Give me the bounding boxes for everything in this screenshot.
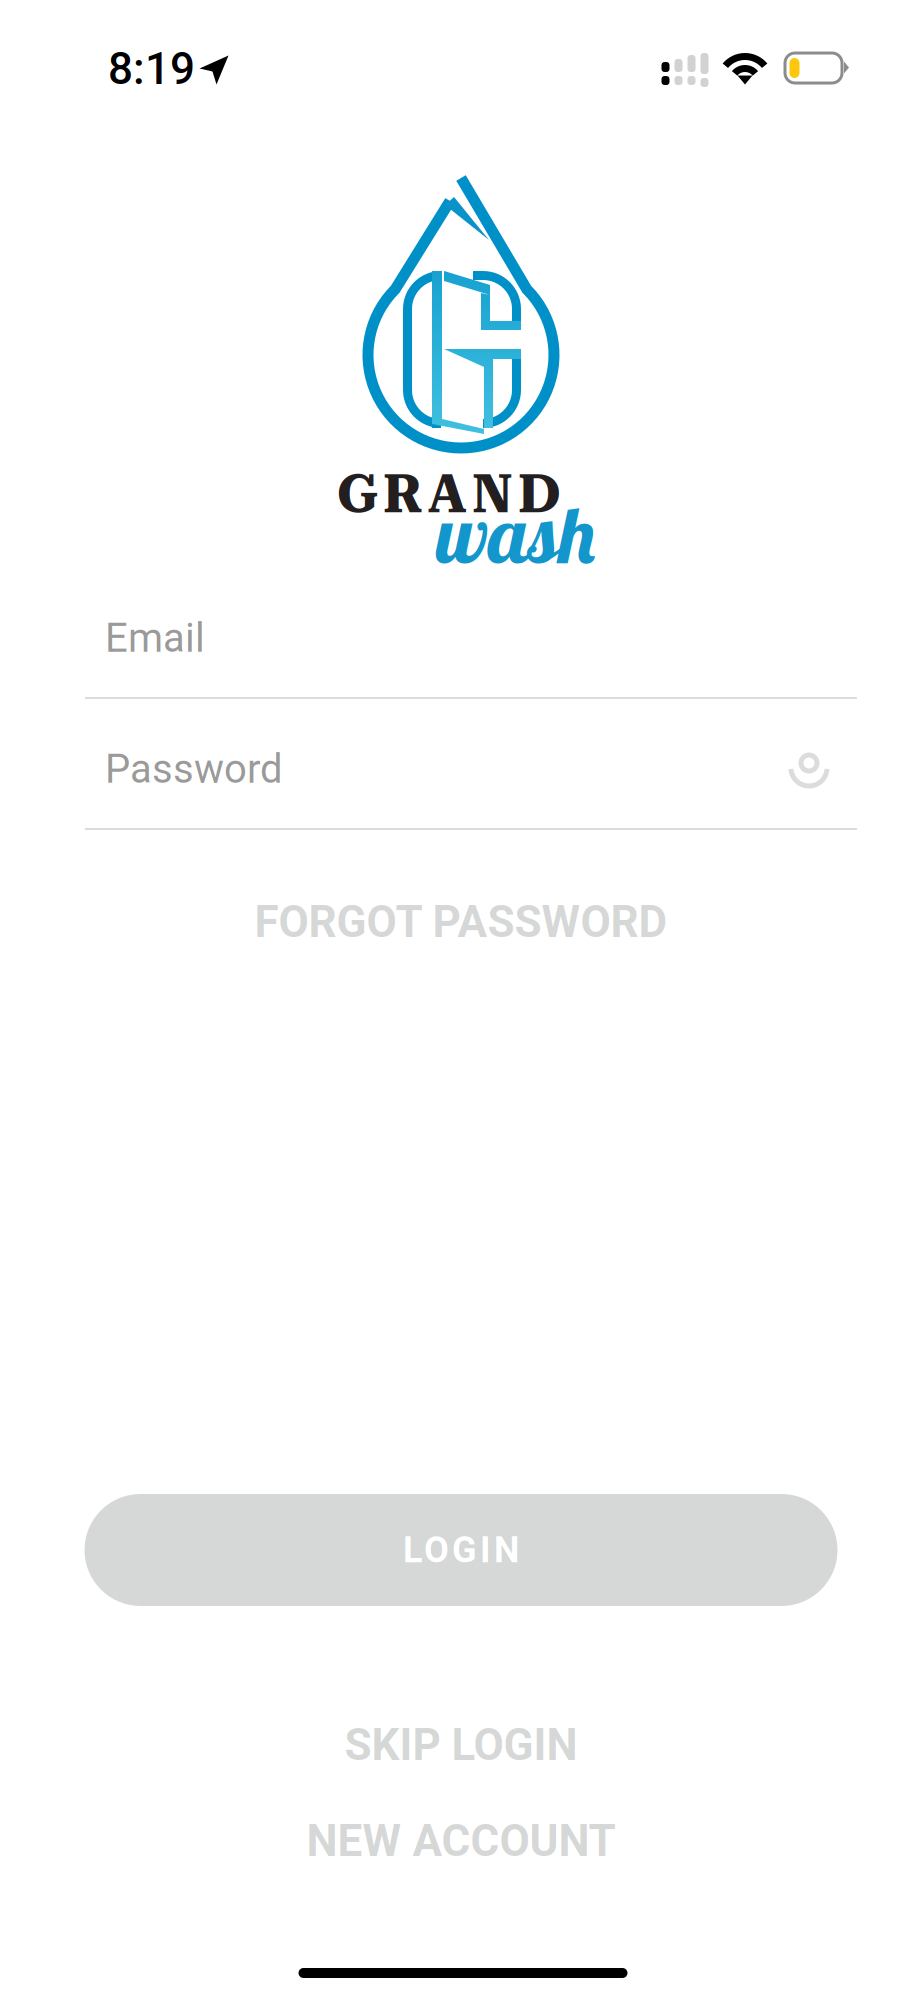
- staticText: Password: [105, 746, 283, 792]
- staticText: FORGOT PASSWORD: [254, 896, 667, 948]
- staticText: GRAND: [337, 463, 561, 525]
- button[interactable]: Email: [85, 588, 857, 708]
- button[interactable]: NEW ACCOUNT: [201, 1793, 721, 1889]
- button[interactable]: FORGOT PASSWORD: [75, 870, 847, 974]
- staticText: NEW ACCOUNT: [306, 1815, 615, 1867]
- staticText: Email: [105, 615, 205, 661]
- button[interactable]: Password: [85, 719, 857, 839]
- staticText: SKIP LOGIN: [344, 1719, 577, 1771]
- staticText: 8:19: [108, 43, 195, 95]
- staticText: LOGIN: [403, 1529, 519, 1571]
- staticText: wash: [435, 485, 599, 583]
- button[interactable]: LOGIN: [84, 1494, 837, 1606]
- button[interactable]: SKIP LOGIN: [231, 1697, 691, 1793]
